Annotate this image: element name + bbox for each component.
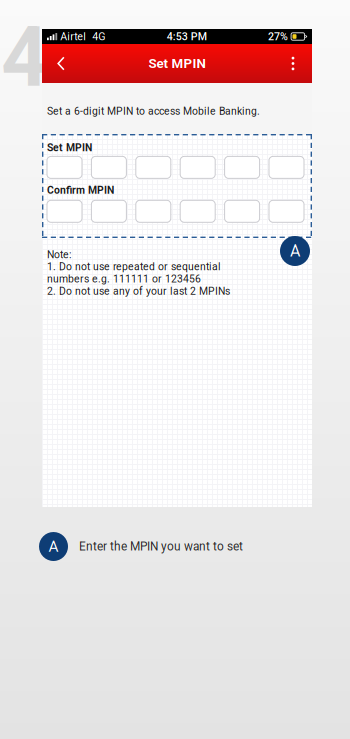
staticText: 27% bbox=[268, 30, 288, 43]
button[interactable]: More options bbox=[279, 44, 307, 83]
staticText: 4 bbox=[1, 9, 48, 106]
staticText: A bbox=[290, 242, 300, 260]
staticText: Set MPIN bbox=[148, 56, 205, 71]
staticText: Confirm MPIN bbox=[47, 184, 114, 196]
staticText: Airtel 4G bbox=[57, 30, 105, 43]
staticText: Set a 6-digit MPIN to access Mobile Bank… bbox=[47, 105, 260, 117]
staticText: 2. Do not use any of your last 2 MPINs bbox=[47, 285, 230, 297]
staticText: Note: bbox=[47, 248, 72, 261]
staticText: Set MPIN bbox=[47, 141, 92, 154]
staticText: 1. Do not use repeated or sequential bbox=[47, 261, 221, 273]
staticText: A bbox=[48, 537, 58, 555]
staticText: Enter the MPIN you want to set bbox=[79, 539, 243, 553]
staticText: 4:53 PM bbox=[167, 30, 207, 43]
button[interactable]: Back bbox=[47, 44, 75, 83]
staticText: numbers e.g. 111111 or 123456 bbox=[47, 273, 201, 285]
